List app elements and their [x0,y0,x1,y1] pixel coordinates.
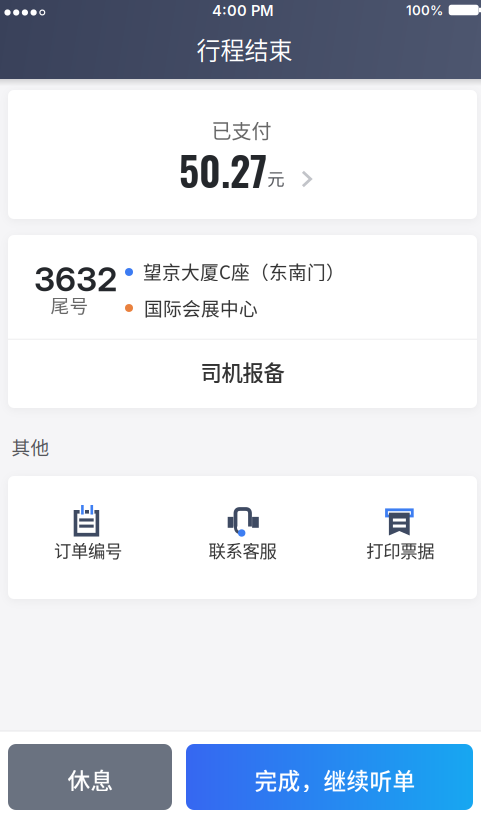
button[interactable]: 联系客服 [164,476,320,599]
staticText: 元 [267,165,284,191]
staticText: 4:00 PM [212,2,274,19]
staticText: 休息 [67,763,113,796]
staticText: 完成，继续听单 [254,763,415,796]
staticText: 已支付 [212,115,272,144]
staticText: 50.27 [179,140,267,199]
staticText: 联系客服 [208,537,276,563]
staticText: 3632 [34,258,117,299]
staticText: 其他 [11,433,49,460]
staticText: 行程结束 [196,31,292,66]
button[interactable]: 已支付 [8,90,477,219]
button[interactable]: 休息 [8,744,172,810]
button[interactable]: 打印票据 [321,476,477,599]
staticText: 尾号 [50,291,88,318]
staticText: 望京大厦C座（东南门） [143,257,345,284]
staticText: 打印票据 [366,537,434,563]
button[interactable]: 司机报备 [8,339,477,408]
button[interactable]: 订单编号 [8,476,164,599]
staticText: 国际会展中心 [144,294,258,321]
button[interactable]: 完成，继续听单 [186,744,473,810]
staticText: 司机报备 [200,356,284,387]
staticText: 100% [406,2,443,18]
staticText: 订单编号 [54,537,122,563]
